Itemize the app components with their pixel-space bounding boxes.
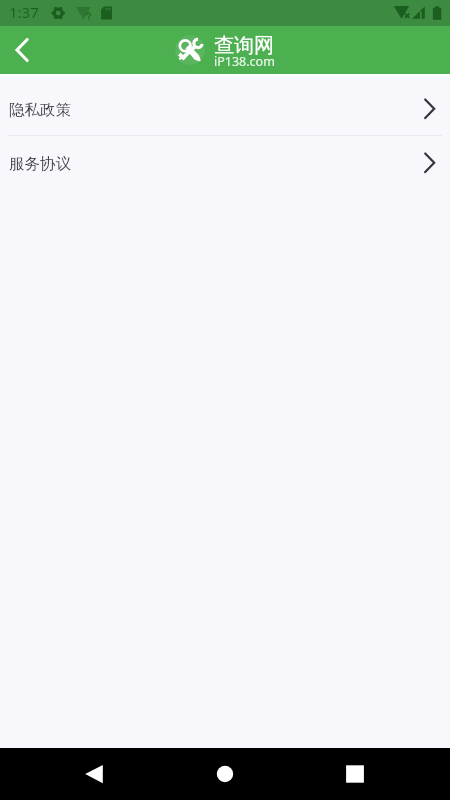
button[interactable]: Back	[0, 27, 46, 73]
button[interactable]: 服务协议	[0, 136, 450, 189]
staticText: iP138.com	[214, 53, 276, 70]
button[interactable]: 隐私政策	[0, 82, 450, 136]
staticText: 查询网	[214, 33, 276, 58]
staticText: 隐私政策	[9, 100, 71, 120]
staticText: 服务协议	[9, 154, 71, 174]
button[interactable]: Back	[50, 748, 140, 800]
button[interactable]: Recent apps	[310, 748, 400, 800]
button[interactable]: Home	[180, 748, 270, 800]
staticText: 1:37	[9, 2, 39, 22]
